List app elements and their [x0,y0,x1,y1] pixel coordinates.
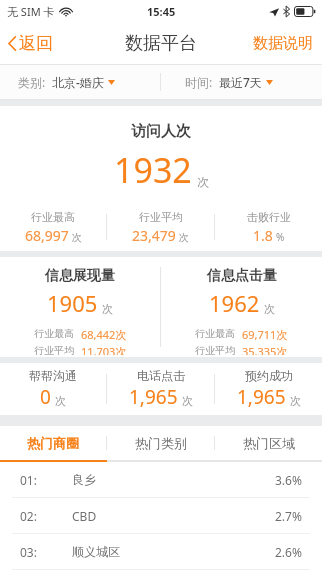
staticText: 69,711次 [242,327,288,342]
staticText: 击败行业 [247,210,291,224]
staticText: 1932 [114,147,192,193]
staticText: CBD [72,508,97,524]
staticText: 数据平台 [125,32,197,55]
staticText: 次 [197,174,209,189]
staticText: 热门类别 [135,435,187,451]
staticText: 热门商圈 [27,435,79,451]
button[interactable]: 热门商圈 [0,426,106,460]
staticText: 北京-婚庆 [52,74,104,90]
button[interactable]: 返回 [0,27,63,60]
staticText: 次 [102,302,113,316]
button[interactable]: 热门类别 [107,426,214,460]
staticText: 信息展现量 [45,267,115,285]
staticText: 1.8 [253,226,273,245]
staticText: 03: [20,544,37,560]
staticText: 行业平均 [139,210,183,224]
staticText: 68,997 [25,226,69,245]
staticText: 预约成功 [245,368,293,383]
staticText: 顺义城区 [72,544,120,559]
staticText: 1905 [47,288,98,318]
staticText: 35,335次 [242,344,288,355]
staticText: 帮帮沟通 [29,368,77,383]
button[interactable]: 时间: [161,65,322,99]
staticText: 行业最高 [31,210,75,224]
staticText: 2.6% [275,544,302,560]
staticText: 15:45 [147,4,176,19]
staticText: 次 [55,394,66,408]
button[interactable]: 02: [0,498,322,533]
staticText: 1962 [209,288,260,318]
staticText: 1,965 [237,384,286,410]
staticText: 次 [290,394,301,408]
button[interactable]: 数据说明 [244,28,322,59]
staticText: 次 [179,231,189,244]
staticText: 最近7天 [219,74,262,90]
button[interactable]: 类别: [0,65,160,99]
staticText: 时间: [185,74,213,90]
staticText: 行业平均 [195,344,235,355]
staticText: 1,965 [129,384,178,410]
staticText: 热门区域 [243,435,295,451]
staticText: 行业最高 [195,327,235,340]
button[interactable]: 热门区域 [215,426,322,460]
staticText: 02: [20,508,37,524]
staticText: 次 [182,394,193,408]
staticText: 11,703次 [81,344,127,355]
staticText: 行业平均 [34,344,74,355]
staticText: 0 [40,384,51,410]
staticText: 次 [264,302,275,316]
staticText: 无 SIM 卡 [7,4,55,19]
staticText: 电话点击 [137,368,185,383]
staticText: 3.6% [275,472,302,488]
button[interactable]: 03: [0,534,322,569]
staticText: 68,442次 [81,327,127,342]
staticText: 信息点击量 [207,267,277,285]
staticText: 23,479 [132,226,176,245]
staticText: 良乡 [72,472,96,487]
staticText: 访问人次 [0,122,322,141]
staticText: 类别: [18,74,46,90]
staticText: 次 [72,231,82,244]
button[interactable]: 01: [0,462,322,497]
staticText: 01: [20,472,37,488]
staticText: % [276,230,285,244]
staticText: 返回 [19,33,53,54]
staticText: 数据说明 [253,34,313,53]
staticText: 行业最高 [34,327,74,340]
staticText: 2.7% [275,508,302,524]
